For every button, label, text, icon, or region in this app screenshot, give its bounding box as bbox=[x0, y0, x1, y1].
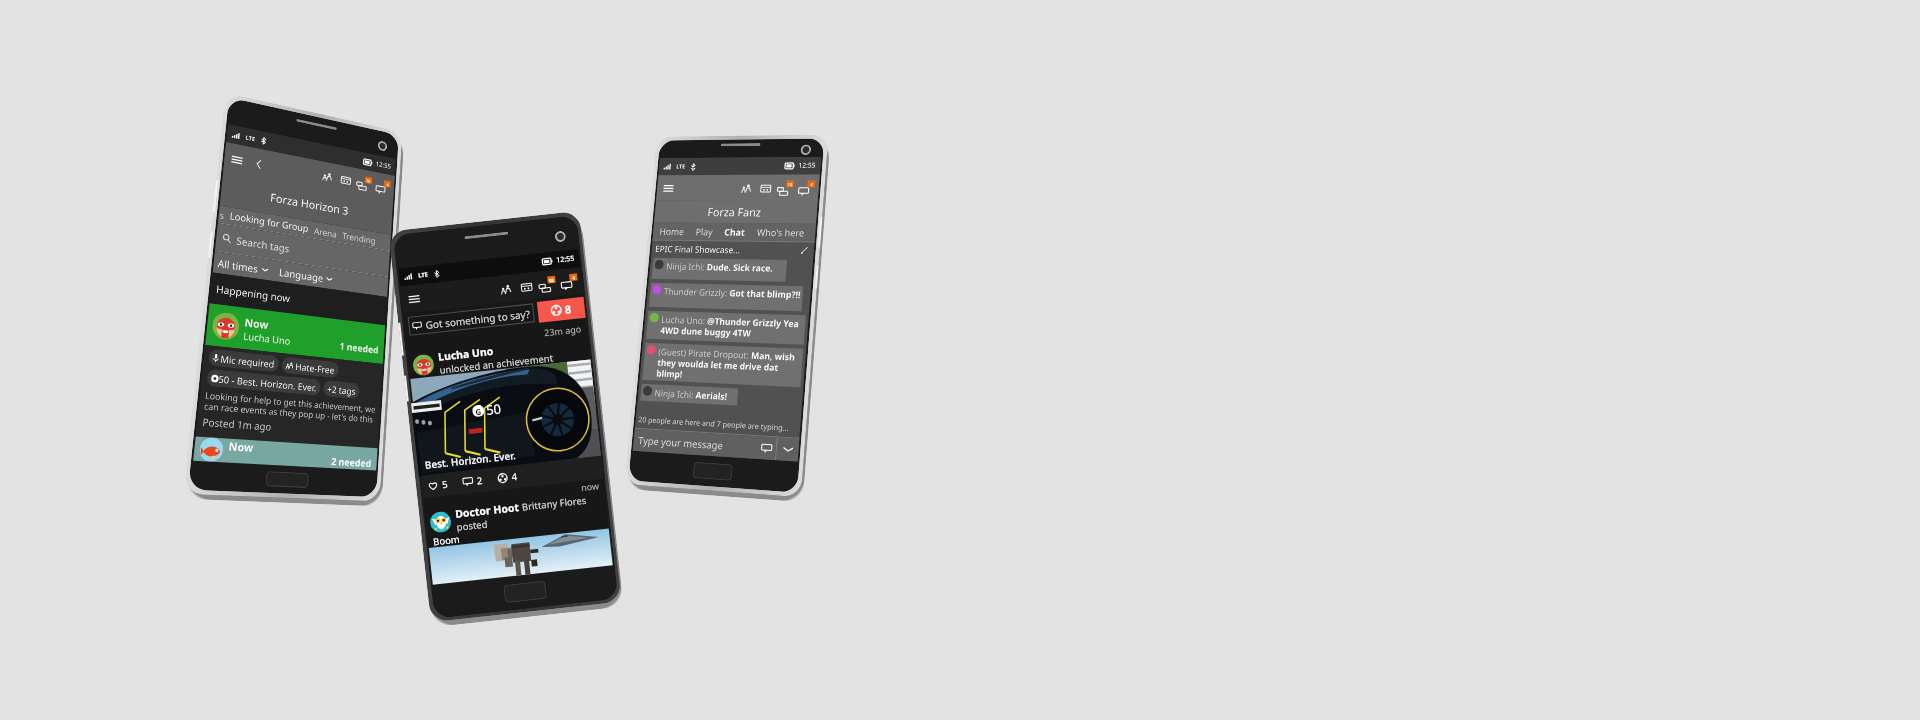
button[interactable]: Friends bbox=[496, 280, 514, 298]
staticText: G bbox=[475, 406, 482, 417]
staticText: 5 bbox=[441, 478, 449, 491]
button[interactable]: Messages bbox=[777, 180, 794, 196]
staticText: LTE bbox=[245, 134, 256, 143]
button[interactable]: Collapse bbox=[776, 437, 799, 461]
button[interactable]: Hate-Free bbox=[285, 359, 335, 376]
button[interactable]: Trending bbox=[342, 229, 376, 246]
staticText: 20 people are here and 7 people are typi… bbox=[638, 414, 790, 433]
button[interactable]: Menu bbox=[405, 290, 423, 307]
staticText: Looking for Group bbox=[229, 209, 309, 235]
staticText: Home bbox=[659, 225, 685, 238]
button[interactable]: Home bbox=[659, 225, 685, 238]
staticText: Search tags bbox=[236, 233, 290, 255]
staticText: 10 bbox=[548, 277, 555, 283]
staticText: 12:55 bbox=[375, 159, 391, 171]
staticText: Got something to say? bbox=[425, 307, 531, 332]
staticText: unlocked an achievement bbox=[439, 351, 554, 376]
staticText: Lucha Uno bbox=[437, 344, 495, 364]
button[interactable]: 8 bbox=[537, 297, 586, 323]
staticText: Happening now bbox=[215, 281, 291, 305]
button[interactable]: Mic required bbox=[213, 351, 275, 370]
staticText: Hate-Free bbox=[295, 360, 335, 376]
button[interactable]: Like, 5 bbox=[427, 478, 449, 493]
staticText: 10 bbox=[366, 177, 371, 184]
button[interactable]: Arena bbox=[314, 224, 337, 240]
staticText: Now bbox=[244, 315, 269, 332]
staticText: LTE bbox=[418, 270, 429, 279]
staticText: Play bbox=[695, 226, 714, 238]
button[interactable]: Edit bbox=[798, 244, 810, 256]
staticText: LTE bbox=[676, 163, 686, 170]
button[interactable]: Clubs bbox=[757, 180, 773, 196]
staticText: Forza Fanz bbox=[707, 205, 762, 220]
button[interactable]: Language bbox=[278, 265, 333, 286]
button[interactable]: Comments, 2 bbox=[462, 474, 483, 489]
button[interactable]: Attach bbox=[756, 437, 777, 459]
button[interactable]: Achievements, 4 bbox=[497, 470, 518, 485]
button[interactable]: Ninja Ichi: Aerials! bbox=[642, 386, 736, 403]
staticText: 4 bbox=[572, 275, 576, 281]
staticText: Brittany Flores bbox=[521, 494, 587, 514]
staticText: Ninja Ichi: Aerials! bbox=[654, 386, 731, 402]
button[interactable]: Got something to say? bbox=[412, 303, 535, 335]
staticText: Trending bbox=[342, 229, 376, 246]
button[interactable]: Clubs bbox=[338, 171, 353, 189]
button[interactable]: Chat bbox=[724, 226, 746, 239]
button[interactable]: (Guest) Pirate Dropout: Man, wish they w… bbox=[644, 345, 801, 385]
button[interactable]: Notifications bbox=[375, 179, 391, 196]
staticText: Arena bbox=[314, 224, 337, 240]
staticText: Posted 1m ago bbox=[202, 415, 272, 434]
staticText: Looking for help to get this achievement… bbox=[204, 389, 376, 425]
button[interactable]: Looking for Group bbox=[229, 209, 309, 235]
button[interactable]: All times bbox=[217, 256, 269, 277]
button[interactable]: Messages bbox=[356, 175, 372, 192]
staticText: +2 tags bbox=[327, 382, 356, 397]
staticText: Best. Horizon. Ever. bbox=[424, 448, 517, 472]
staticText: 4 bbox=[386, 182, 389, 187]
staticText: 10 bbox=[787, 181, 793, 187]
staticText: now bbox=[580, 479, 600, 493]
button[interactable]: Notifications bbox=[560, 273, 579, 291]
button[interactable]: Back bbox=[251, 155, 265, 172]
staticText: EPIC Final Showcase... bbox=[655, 242, 741, 255]
staticText: Lucha Uno bbox=[243, 329, 291, 348]
staticText: Forza Horizon 3 bbox=[270, 190, 349, 219]
staticText: 8 bbox=[564, 301, 572, 317]
button[interactable]: Now bbox=[210, 304, 381, 363]
staticText: Ninja Ichi: Dude. Sick race. bbox=[666, 260, 773, 274]
button[interactable]: Friends bbox=[738, 181, 754, 196]
button[interactable]: Search tags bbox=[221, 224, 390, 276]
button[interactable]: 50 - Best. Horizon. Ever. bbox=[211, 371, 317, 393]
staticText: 23m ago bbox=[543, 322, 583, 338]
staticText: Mic required bbox=[220, 352, 275, 370]
button[interactable]: Now bbox=[198, 437, 373, 470]
staticText: 12:55 bbox=[798, 161, 816, 171]
staticText: 4 bbox=[511, 470, 518, 484]
button[interactable]: Notifications bbox=[798, 180, 815, 196]
staticText: 4 bbox=[810, 181, 813, 187]
button[interactable]: Who's here bbox=[756, 226, 805, 239]
staticText: Doctor Hoot bbox=[454, 500, 520, 521]
staticText: 50 bbox=[485, 399, 502, 419]
staticText: Lucha Uno: @Thunder Grizzly Yea 4WD dune… bbox=[660, 313, 804, 340]
button[interactable]: Menu bbox=[228, 151, 246, 168]
staticText: 12:55 bbox=[556, 254, 575, 265]
staticText: 2 bbox=[476, 474, 483, 487]
button[interactable]: Lucha Uno: @Thunder Grizzly Yea 4WD dune… bbox=[648, 313, 804, 342]
button[interactable]: Clubs bbox=[517, 278, 535, 296]
staticText: 2 needed bbox=[331, 454, 372, 470]
button[interactable]: Menu bbox=[660, 181, 677, 195]
button[interactable]: +2 tags bbox=[327, 382, 356, 397]
staticText: (Guest) Pirate Dropout: Man, wish they w… bbox=[656, 345, 801, 385]
button[interactable]: Thunder Grizzly: Got that blimp?!! bbox=[651, 285, 801, 309]
staticText: posted bbox=[456, 518, 488, 533]
staticText: Language bbox=[278, 265, 324, 285]
button[interactable]: Ninja Ichi: Dude. Sick race. bbox=[654, 260, 785, 280]
staticText: Now bbox=[228, 439, 254, 455]
button[interactable]: Messages bbox=[538, 276, 557, 293]
staticText: All times bbox=[217, 256, 259, 276]
staticText: s bbox=[219, 208, 225, 221]
button[interactable]: Friends bbox=[319, 168, 334, 185]
button[interactable]: Play bbox=[695, 226, 714, 238]
staticText: 1 needed bbox=[339, 339, 380, 357]
